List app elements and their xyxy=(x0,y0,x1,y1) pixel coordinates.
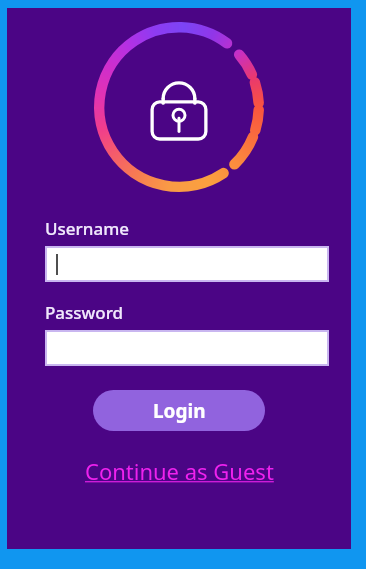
staticText: Continue as Guest xyxy=(85,456,274,486)
button[interactable]: Continue as Guest xyxy=(79,453,280,489)
staticText: Password xyxy=(45,301,124,324)
button[interactable]: Login xyxy=(93,390,265,431)
staticText: Username xyxy=(45,217,129,240)
other: Lock xyxy=(151,73,207,141)
staticText: Login xyxy=(153,398,206,424)
button[interactable] xyxy=(47,248,327,280)
